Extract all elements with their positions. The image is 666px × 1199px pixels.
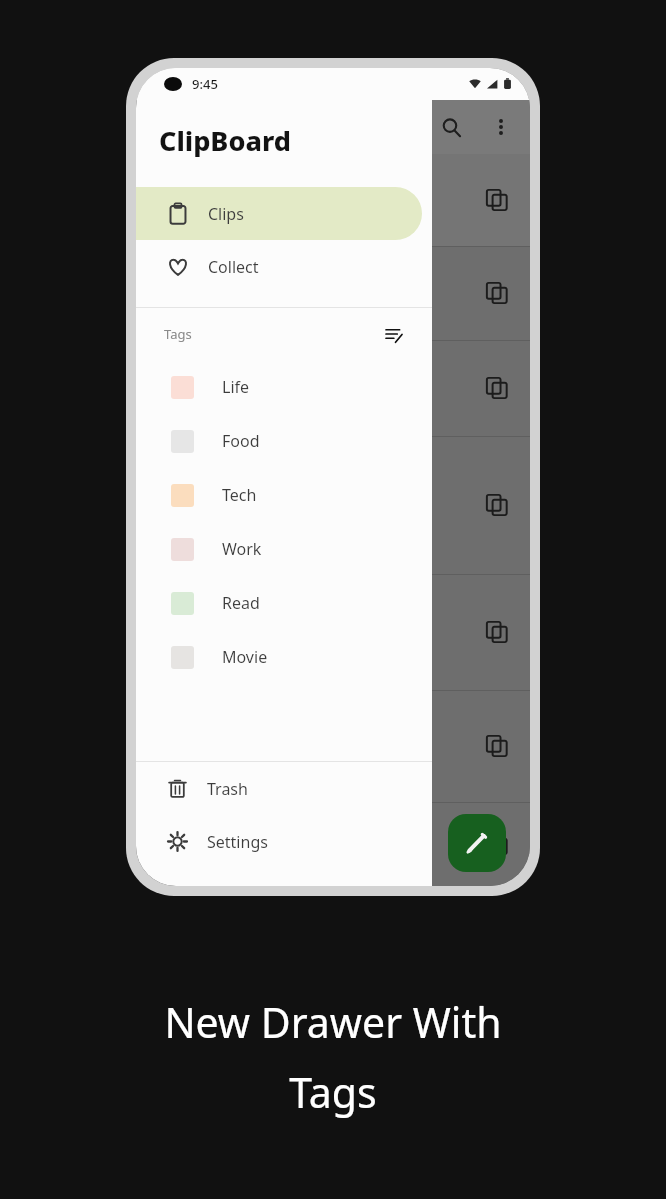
staticText: know <box>150 268 190 288</box>
button[interactable]: Collect <box>136 240 432 293</box>
button[interactable]: Movie <box>136 630 432 684</box>
button[interactable]: Trash <box>136 762 432 815</box>
staticText: Tags <box>164 325 192 343</box>
staticText: Read <box>222 592 260 614</box>
staticText: Trash <box>207 778 248 800</box>
staticText: 9:45 <box>192 75 218 93</box>
staticText: Tags <box>289 1064 377 1120</box>
staticText: 9:45 <box>192 75 218 93</box>
staticText: Collect <box>208 256 259 278</box>
button[interactable]: Clips <box>136 187 422 240</box>
staticText: New Drawer With <box>164 994 502 1050</box>
button[interactable]: . <box>136 802 530 886</box>
button[interactable]: ne and <box>136 340 530 436</box>
staticText: Movie <box>222 646 268 668</box>
staticText: Work <box>222 538 262 560</box>
button[interactable]: Work <box>136 522 432 576</box>
button[interactable]: New clip <box>448 814 506 872</box>
staticText: Clips <box>208 203 244 225</box>
button[interactable]: s by the <box>136 574 530 690</box>
staticText: ne and <box>150 362 200 382</box>
button[interactable]: #Life <box>136 154 530 246</box>
button[interactable]: Settings <box>136 815 432 868</box>
staticText: Tech <box>222 484 257 506</box>
staticText: ge, <box>150 478 173 498</box>
staticText: Food <box>222 430 260 452</box>
button[interactable]: ld age <box>136 436 530 574</box>
button[interactable]: Food <box>136 414 432 468</box>
staticText: #Life <box>150 190 176 205</box>
button[interactable]: More options <box>486 112 516 142</box>
button[interactable]: Tech <box>136 468 432 522</box>
staticText: Life <box>222 376 250 398</box>
button[interactable]: Search <box>434 110 468 144</box>
button[interactable]: Life <box>136 360 432 414</box>
button[interactable]: Edit tags <box>380 321 406 347</box>
staticText: ClipBoard <box>159 122 291 159</box>
button[interactable]: ing for. <box>136 690 530 802</box>
staticText: s by the <box>150 596 207 616</box>
button[interactable]: Read <box>136 576 432 630</box>
staticText: Settings <box>207 831 268 853</box>
button[interactable]: know <box>136 246 530 340</box>
